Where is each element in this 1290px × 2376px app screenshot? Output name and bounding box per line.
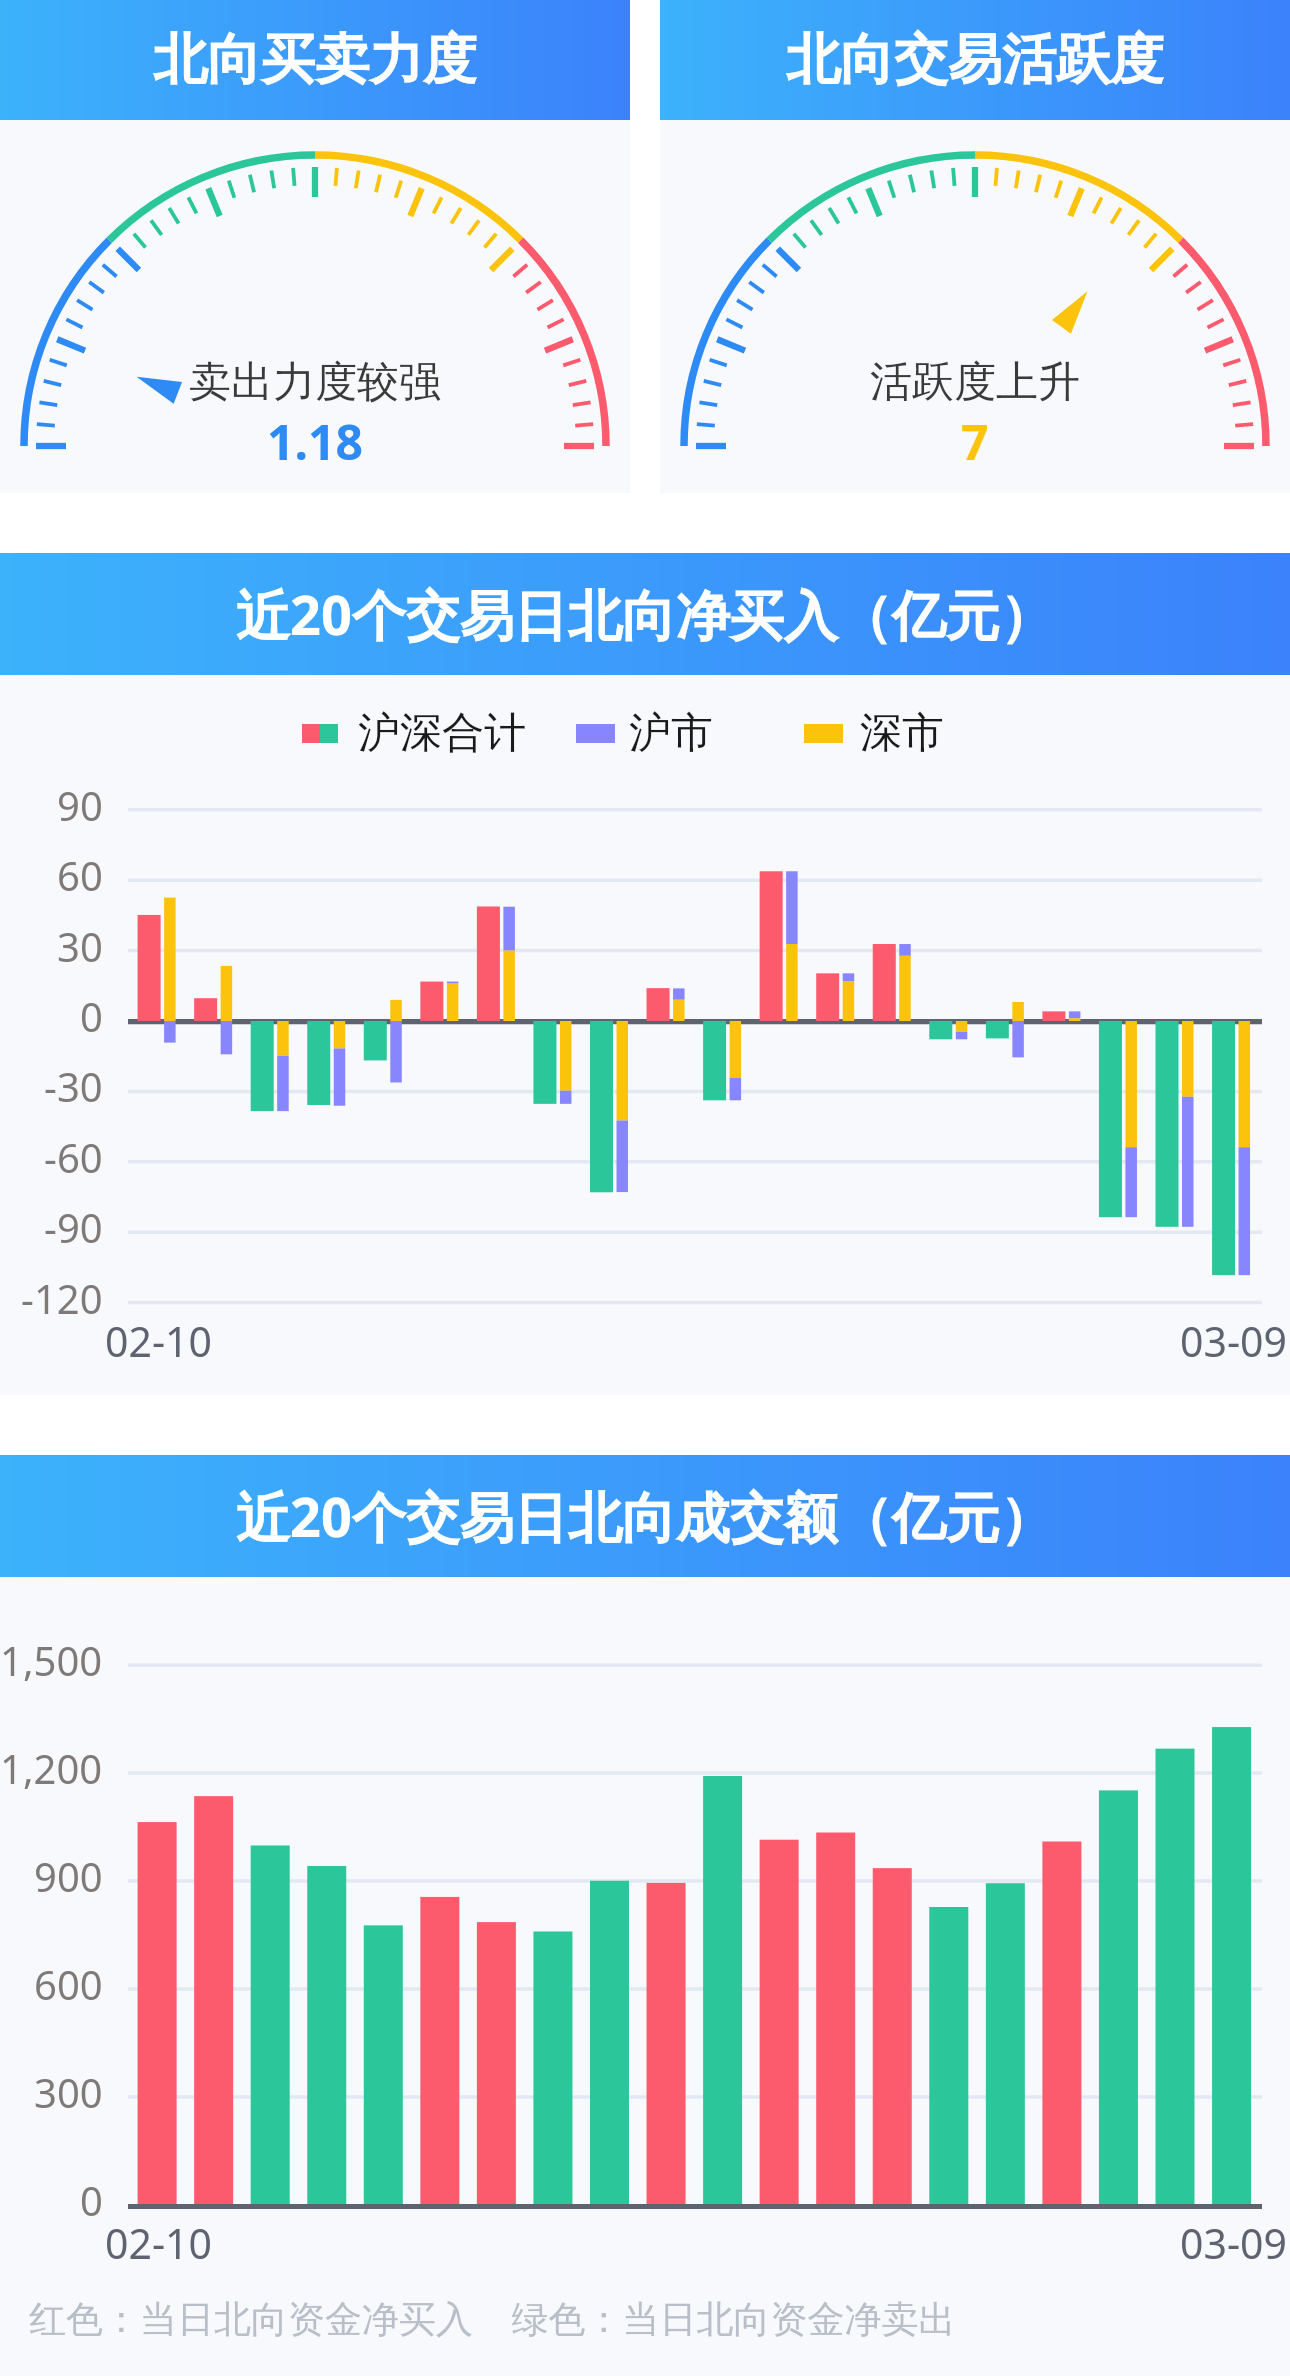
staticText: 90 [57, 778, 103, 832]
staticText: 02-10 [105, 2215, 213, 2271]
staticText: 60 [57, 848, 103, 902]
staticText: 沪深合计 [358, 707, 526, 760]
staticText: 03-09 [1180, 2215, 1288, 2271]
button[interactable]: 沪市 [576, 707, 713, 760]
other: 北向交易活跃度 仪表盘 活跃度上升 7 [660, 120, 1290, 493]
staticText: 卖出力度较强 [189, 356, 441, 409]
button[interactable]: 近20个交易日北向成交额（亿元） [0, 1455, 1290, 2376]
staticText: 02-10 [105, 1313, 213, 1369]
staticText: 03-09 [1180, 1313, 1288, 1369]
staticText: 北向交易活跃度 [786, 26, 1164, 94]
other: 北向买卖力度 仪表盘 卖出力度较强 1.18 [0, 120, 630, 493]
staticText: 900 [34, 1849, 103, 1903]
staticText: 0 [80, 989, 103, 1043]
staticText: 300 [34, 2065, 103, 2119]
staticText: 近20个交易日北向净买入（亿元） [236, 577, 1054, 651]
staticText: -60 [44, 1130, 103, 1184]
staticText: 1,200 [0, 1741, 103, 1795]
staticText: 1,500 [0, 1633, 103, 1687]
button[interactable]: 近20个交易日北向净买入（亿元） [0, 553, 1290, 1395]
staticText: 7 [961, 409, 989, 474]
staticText: -90 [44, 1200, 103, 1254]
button[interactable]: 北向交易活跃度 [660, 0, 1290, 493]
staticText: 北向买卖力度 [153, 26, 477, 94]
staticText: 30 [57, 919, 103, 973]
staticText: 活跃度上升 [870, 356, 1080, 409]
staticText: 1.18 [267, 409, 363, 474]
staticText: 600 [34, 1957, 103, 2011]
staticText: 红色：当日北向资金净买入 绿色：当日北向资金净卖出 [29, 2292, 956, 2343]
staticText: 0 [80, 2173, 103, 2227]
staticText: 深市 [860, 707, 944, 760]
button[interactable]: 沪深合计 [302, 707, 526, 760]
button[interactable]: 深市 [804, 707, 944, 760]
staticText: -30 [44, 1059, 103, 1113]
button[interactable]: 北向买卖力度 [0, 0, 630, 493]
staticText: -120 [21, 1271, 103, 1325]
staticText: 沪市 [629, 707, 713, 760]
staticText: 近20个交易日北向成交额（亿元） [236, 1479, 1054, 1553]
